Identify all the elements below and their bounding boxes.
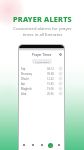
button[interactable]: Maghrib [19, 86, 64, 91]
button[interactable]: Qibla [29, 141, 37, 149]
staticText: Prayer Times [32, 53, 52, 57]
staticText: Isha [21, 92, 27, 96]
button[interactable]: Asr [19, 81, 64, 86]
staticText: 12:22 [47, 77, 54, 81]
staticText: 19:06 [47, 87, 54, 91]
button[interactable]: Alerts [46, 141, 54, 149]
staticText: Maghrib [21, 87, 32, 91]
staticText: Fajr [21, 67, 26, 71]
staticText: 12 Jun 2024 [35, 60, 49, 63]
staticText: 05:38 [47, 72, 54, 76]
button[interactable]: Settings [58, 52, 63, 57]
button[interactable]: 12 Jun 2024 [32, 59, 52, 64]
staticText: Dhuhr [21, 77, 30, 81]
staticText: PRAYER ALERTS [13, 14, 72, 24]
button[interactable]: Home [20, 141, 28, 149]
staticText: 20:36 [47, 92, 54, 96]
staticText: 04:12 [47, 67, 54, 71]
button[interactable]: Isha [19, 91, 64, 96]
staticText: Shurooq [21, 72, 32, 76]
button[interactable]: Dhuhr [19, 76, 64, 81]
button[interactable]: Fajr [19, 66, 64, 71]
button[interactable]: Quran [38, 141, 46, 149]
staticText: 15:45 [47, 82, 54, 86]
staticText: Customized alarms for prayer times in al… [13, 26, 72, 38]
button[interactable]: More [55, 141, 63, 149]
button[interactable]: Shurooq [19, 71, 64, 76]
staticText: Asr [21, 82, 26, 86]
